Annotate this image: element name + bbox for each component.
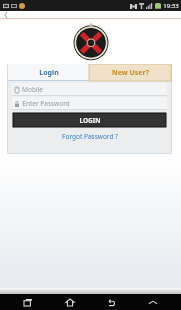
button[interactable]: LOGIN: [13, 113, 166, 127]
staticText: Mobile: [22, 85, 43, 94]
staticText: 19:33: [163, 2, 179, 10]
button[interactable]: Login: [8, 64, 89, 81]
button[interactable]: New User?: [89, 64, 171, 81]
button[interactable]: Expand: [140, 294, 166, 310]
staticText: New User?: [112, 68, 149, 78]
staticText: Enter Password: [22, 99, 70, 108]
button[interactable]: Home: [57, 294, 83, 310]
button[interactable]: Back: [98, 294, 124, 310]
button[interactable]: Mobile: [12, 83, 167, 96]
staticText: Login: [39, 68, 59, 78]
button[interactable]: Recents: [15, 294, 41, 310]
button[interactable]: Enter Password: [12, 97, 167, 110]
button[interactable]: Back: [4, 12, 8, 18]
button[interactable]: Forgot Password ?: [58, 131, 122, 142]
staticText: LOGIN: [79, 116, 101, 125]
staticText: Forgot Password ?: [62, 132, 118, 141]
